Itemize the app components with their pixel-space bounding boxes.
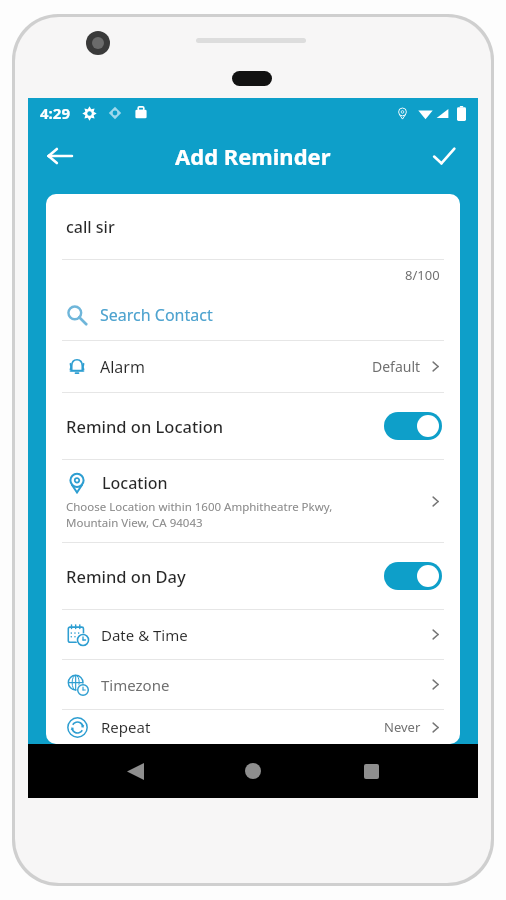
button[interactable]: Search Contact xyxy=(46,290,460,340)
button[interactable]: Alarm xyxy=(46,341,460,392)
staticText: Location xyxy=(102,472,168,494)
button[interactable]: Back xyxy=(118,754,152,788)
staticText: 4:29 xyxy=(40,103,70,123)
staticText: Default xyxy=(372,357,421,376)
staticText: 8/100 xyxy=(405,266,440,284)
button[interactable]: Remind on Day xyxy=(46,543,460,609)
staticText: Mountain View, CA 94043 xyxy=(66,515,203,531)
staticText: Choose Location within 1600 Amphitheatre… xyxy=(66,499,333,515)
button[interactable]: call sir xyxy=(46,194,460,259)
staticText: call sir xyxy=(66,216,115,238)
button[interactable]: Remind on Location xyxy=(46,393,460,459)
staticText: Remind on Location xyxy=(66,415,224,437)
staticText: Alarm xyxy=(100,356,145,378)
button[interactable]: Navigate back xyxy=(36,132,84,180)
staticText: Timezone xyxy=(101,675,170,695)
button[interactable]: Home xyxy=(236,754,270,788)
button[interactable]: Date & Time xyxy=(46,610,460,659)
button[interactable]: Location xyxy=(46,460,460,542)
staticText: Search Contact xyxy=(100,304,213,326)
button[interactable]: Timezone xyxy=(46,660,460,709)
button[interactable]: Repeat xyxy=(46,710,460,744)
button[interactable]: Save reminder xyxy=(420,132,468,180)
staticText: Remind on Day xyxy=(66,565,186,587)
staticText: Never xyxy=(384,718,421,736)
button[interactable]: Recent apps xyxy=(354,754,388,788)
staticText: Add Reminder xyxy=(175,141,331,171)
staticText: Date & Time xyxy=(101,625,188,645)
staticText: Repeat xyxy=(101,717,151,737)
